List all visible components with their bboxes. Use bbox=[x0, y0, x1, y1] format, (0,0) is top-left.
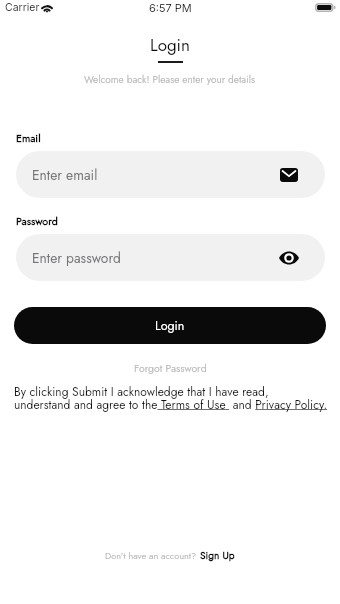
staticText: Carrier bbox=[5, 1, 40, 14]
button[interactable]: Forgot Password bbox=[128, 359, 213, 378]
staticText: 6:57 PM bbox=[149, 1, 192, 14]
staticText: Enter password bbox=[32, 248, 121, 268]
staticText: Sign Up bbox=[200, 548, 235, 563]
staticText: Email bbox=[16, 131, 41, 146]
button[interactable]: Enter email bbox=[16, 151, 325, 198]
button[interactable]: Enter password bbox=[16, 234, 325, 281]
button[interactable]: Sign Up bbox=[200, 546, 235, 565]
staticText: Login bbox=[150, 33, 190, 58]
staticText: Welcome back! Please enter your details bbox=[84, 72, 256, 86]
staticText: Password bbox=[16, 214, 58, 229]
staticText: Forgot Password bbox=[134, 361, 207, 376]
staticText: Don't have an account? bbox=[105, 549, 197, 562]
button[interactable]: Show password bbox=[278, 247, 300, 269]
staticText: Enter email bbox=[32, 165, 98, 185]
staticText: Login bbox=[155, 317, 185, 335]
button[interactable]: Login bbox=[14, 307, 326, 344]
button[interactable]: Email bbox=[278, 164, 300, 186]
staticText: By clicking Submit I acknowledge that I … bbox=[14, 383, 328, 413]
